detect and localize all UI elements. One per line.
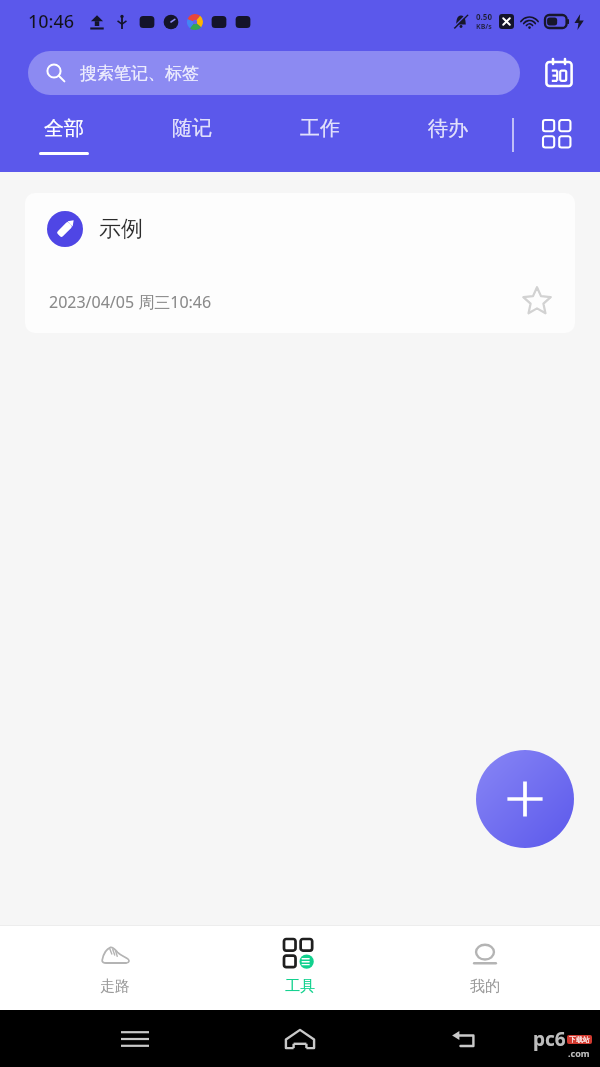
staticText: pc6 (533, 1026, 566, 1052)
staticText: 随记 (172, 116, 212, 141)
staticText: 走路 (100, 977, 130, 996)
button[interactable]: 工具 (230, 925, 370, 1010)
button[interactable]: 走路 (45, 925, 185, 1010)
button[interactable]: Calendar (536, 50, 582, 96)
button[interactable]: 搜索笔记、标签 (28, 51, 520, 95)
button[interactable]: Back (435, 1010, 495, 1067)
staticText: 搜索笔记、标签 (80, 63, 199, 84)
staticText: 10:46 (28, 9, 75, 34)
button[interactable]: Recent apps (105, 1010, 165, 1067)
button[interactable]: 示例 (25, 193, 575, 333)
staticText: 我的 (470, 977, 500, 996)
button[interactable]: New note (476, 750, 574, 848)
button[interactable]: Grid view (514, 104, 600, 164)
button[interactable]: Home (270, 1010, 330, 1067)
staticText: KB/s (476, 22, 492, 32)
staticText: 下载站 (569, 1035, 590, 1044)
button[interactable]: Favorite (515, 279, 559, 323)
staticText: 0.50 (476, 11, 492, 22)
button[interactable]: 工作 (256, 104, 384, 172)
button[interactable]: 随记 (128, 104, 256, 172)
button[interactable]: 待办 (384, 104, 512, 172)
button[interactable]: 全部 (0, 104, 128, 172)
button[interactable]: 我的 (415, 925, 555, 1010)
staticText: 示例 (99, 215, 143, 243)
staticText: .com (568, 1047, 590, 1059)
staticText: 待办 (428, 116, 468, 141)
staticText: 工具 (285, 977, 315, 996)
staticText: 工作 (300, 116, 340, 141)
staticText: 全部 (44, 116, 84, 141)
staticText: 2023/04/05 周三10:46 (49, 291, 212, 313)
